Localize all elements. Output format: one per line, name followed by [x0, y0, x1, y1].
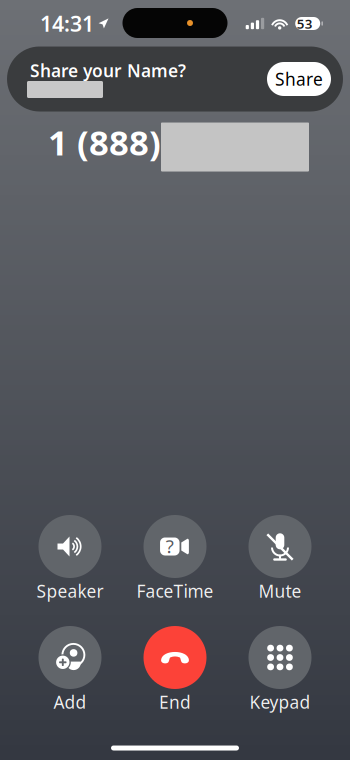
button[interactable]: End — [127, 626, 223, 714]
button[interactable]: Add — [22, 626, 118, 714]
staticText: Share — [275, 67, 323, 90]
staticText: 1 (888) — [48, 119, 161, 165]
button[interactable]: Speaker — [22, 515, 118, 603]
staticText: FaceTime — [136, 579, 213, 602]
staticText: End — [159, 690, 191, 713]
staticText: ? — [166, 534, 174, 558]
button[interactable]: ? — [127, 515, 223, 603]
staticText: Mute — [258, 579, 301, 602]
staticText: Speaker — [36, 579, 103, 602]
staticText: Share your Name? — [30, 59, 186, 82]
staticText: 14:31 — [40, 9, 94, 38]
button[interactable]: Mute — [232, 515, 328, 603]
button[interactable]: Share — [267, 62, 331, 96]
staticText: Keypad — [249, 690, 310, 713]
button[interactable]: Keypad — [232, 626, 328, 714]
staticText: Add — [53, 690, 86, 713]
staticText: 53 — [297, 15, 313, 32]
